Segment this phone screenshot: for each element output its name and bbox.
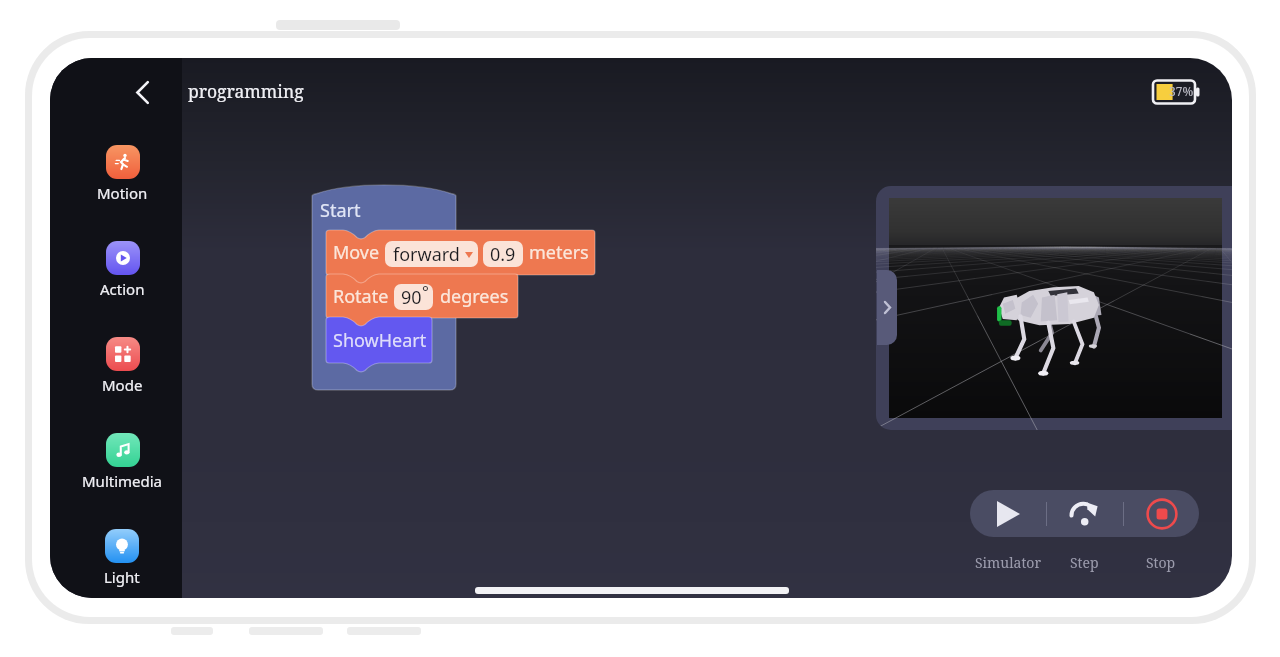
button[interactable]: Expand simulator — [877, 270, 897, 345]
button[interactable]: ShowHeart — [326, 317, 432, 370]
staticText: Motion — [97, 183, 148, 203]
staticText: 0.9 — [490, 242, 516, 267]
staticText: Move — [333, 240, 380, 265]
button[interactable]: Move — [326, 230, 595, 282]
button[interactable]: Run simulator — [970, 490, 1046, 537]
button[interactable]: Rotate — [326, 274, 518, 325]
button[interactable]: Light — [104, 529, 140, 587]
staticText: Light — [104, 567, 140, 587]
staticText: degrees — [440, 284, 509, 309]
button[interactable]: Back — [119, 69, 165, 115]
button[interactable]: Stop — [1124, 490, 1199, 537]
staticText: Step — [1070, 553, 1099, 572]
staticText: Simulator — [975, 553, 1042, 572]
button[interactable]: Simulator — [970, 550, 1046, 574]
button[interactable]: Motion — [97, 145, 148, 203]
staticText: Mode — [102, 375, 143, 395]
staticText: Multimedia — [82, 471, 163, 491]
staticText: ShowHeart — [333, 328, 427, 353]
button[interactable]: 90 — [394, 284, 433, 310]
button[interactable]: Battery 37 percent — [1153, 79, 1201, 105]
button[interactable]: forward — [385, 241, 478, 267]
button[interactable]: Step — [1047, 490, 1123, 537]
staticText: Rotate — [333, 284, 389, 309]
button[interactable]: Mode — [102, 337, 143, 395]
staticText: Action — [100, 279, 145, 299]
button[interactable]: Start — [312, 186, 456, 390]
staticText: 37% — [1169, 83, 1194, 99]
button[interactable]: Stop — [1123, 550, 1199, 574]
staticText: ° — [422, 284, 429, 303]
button[interactable]: 0.9 — [483, 241, 523, 267]
staticText: meters — [529, 240, 589, 265]
button[interactable]: Step — [1046, 550, 1123, 574]
staticText: forward — [393, 242, 460, 267]
button[interactable]: Multimedia — [82, 433, 163, 491]
staticText: programming — [188, 79, 304, 103]
staticText: 90 — [401, 285, 422, 310]
staticText: Start — [320, 198, 361, 223]
button[interactable]: Action — [100, 241, 145, 299]
staticText: Stop — [1146, 553, 1176, 572]
